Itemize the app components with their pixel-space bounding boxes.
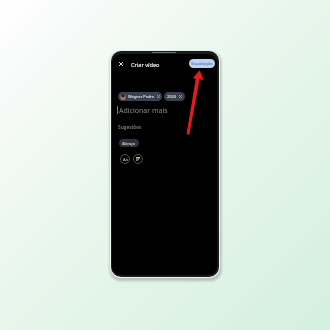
button[interactable]: Mídia (133, 154, 143, 164)
staticText: Criar vídeo (131, 61, 160, 69)
button[interactable]: 2024 (164, 92, 185, 101)
button[interactable]: Fechar (115, 58, 127, 70)
staticText: Wagner Pedro (128, 94, 155, 99)
button[interactable]: Visualização (189, 59, 215, 68)
button[interactable]: Wagner Pedro (118, 92, 162, 101)
button[interactable]: Formatar texto (120, 154, 130, 164)
staticText: Adicionar mais (119, 106, 168, 116)
staticText: Sugestões (118, 124, 142, 131)
staticText: 2024 (167, 94, 176, 99)
button[interactable]: Abraço (119, 139, 139, 147)
staticText: Aa (123, 157, 128, 162)
staticText: Abraço (122, 141, 136, 146)
staticText: Visualização (191, 61, 213, 66)
